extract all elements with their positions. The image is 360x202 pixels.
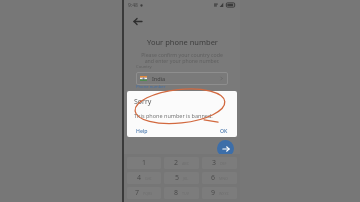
staticText: 9:48	[128, 2, 138, 9]
button[interactable]: Back	[130, 14, 144, 28]
staticText: 4	[137, 173, 142, 183]
button[interactable]: 2	[164, 157, 199, 169]
staticText: Your phone number	[147, 37, 218, 47]
button[interactable]: Help	[134, 125, 150, 136]
staticText: Sorry	[134, 97, 152, 107]
staticText: This phone number is banned.	[134, 112, 213, 119]
staticText: OK	[220, 127, 228, 134]
staticText: 6	[211, 173, 216, 183]
staticText: Phone number	[136, 84, 166, 90]
button[interactable]: 8	[164, 187, 199, 199]
button[interactable]: 3	[202, 157, 237, 169]
button[interactable]: 6	[202, 172, 237, 184]
staticText: 1	[142, 158, 147, 168]
staticText: 9	[211, 188, 216, 198]
staticText: Please confirm your country code and ent…	[141, 51, 223, 65]
button[interactable]: India	[136, 72, 228, 85]
button[interactable]: 5	[164, 172, 199, 184]
button[interactable]: 7	[127, 187, 161, 199]
staticText: 3	[212, 158, 217, 168]
button[interactable]: 4	[127, 172, 161, 184]
staticText: Country	[136, 64, 152, 70]
staticText: 2	[174, 158, 179, 168]
staticText: 5	[175, 173, 180, 183]
button[interactable]: OK	[218, 125, 230, 136]
staticText: India	[152, 75, 166, 82]
button[interactable]: Next	[217, 140, 234, 157]
staticText: 7	[135, 188, 140, 198]
staticText: Help	[136, 127, 148, 134]
staticText: 8	[174, 188, 179, 198]
button[interactable]: 9	[202, 187, 237, 199]
